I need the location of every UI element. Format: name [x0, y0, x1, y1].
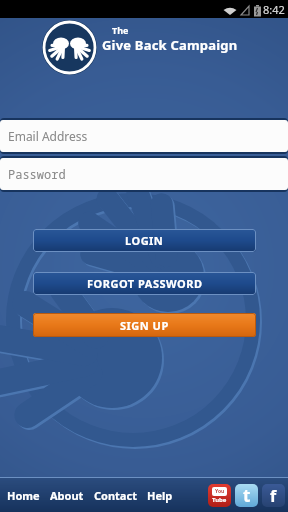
staticText: The — [112, 24, 129, 36]
button[interactable]: Help — [142, 488, 178, 503]
button[interactable]: Home — [2, 488, 45, 503]
staticText: Password — [8, 166, 66, 182]
staticText: Email Address — [8, 128, 88, 144]
button[interactable]: FORGOT PASSWORD — [33, 272, 256, 295]
staticText: LOGIN — [125, 233, 164, 248]
button[interactable]: Contact — [89, 488, 142, 503]
button[interactable]: SIGN UP — [33, 313, 256, 337]
staticText: Tube — [212, 496, 227, 504]
staticText: SIGN UP — [120, 318, 169, 333]
button[interactable]: You — [208, 484, 231, 507]
button[interactable]: About — [45, 488, 89, 503]
staticText: FORGOT PASSWORD — [87, 276, 203, 291]
button[interactable]: LOGIN — [33, 229, 256, 252]
staticText: You — [215, 488, 225, 495]
button[interactable]: Email Address — [0, 120, 288, 152]
staticText: f — [270, 485, 277, 507]
button[interactable]: Password — [0, 158, 288, 190]
staticText: t — [243, 484, 251, 507]
button[interactable]: t — [235, 484, 258, 507]
staticText: Give Back Campaign — [102, 36, 238, 54]
staticText: 8:42 — [263, 2, 285, 17]
button[interactable]: f — [262, 484, 285, 507]
